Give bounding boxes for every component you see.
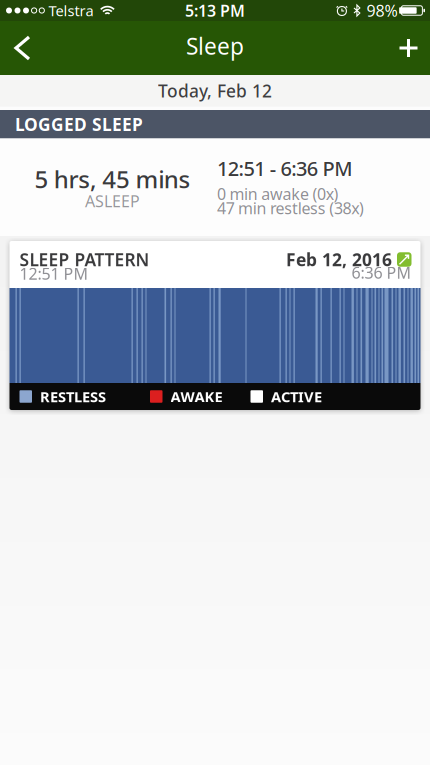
staticText: ASLEEP: [85, 190, 140, 212]
button[interactable]: Add: [399, 23, 430, 73]
staticText: LOGGED SLEEP: [15, 113, 143, 136]
staticText: 98%: [366, 0, 397, 21]
staticText: 12:51 - 6:36 PM: [217, 155, 352, 182]
staticText: 5 hrs, 45 mins: [34, 163, 190, 195]
staticText: 5:13 PM: [185, 0, 245, 21]
staticText: 12:51 PM: [19, 263, 88, 284]
staticText: 47 min restless (38x): [217, 197, 364, 218]
button[interactable]: Back: [0, 23, 29, 73]
staticText: 0 min awake (0x): [217, 183, 338, 204]
staticText: AWAKE: [170, 387, 222, 406]
staticText: ACTIVE: [271, 387, 322, 406]
button[interactable]: Share sleep pattern: [397, 252, 411, 267]
staticText: 6:36 PM: [351, 262, 411, 283]
staticText: SLEEP PATTERN: [19, 248, 149, 271]
staticText: Feb 12, 2016: [286, 248, 392, 271]
staticText: RESTLESS: [40, 387, 106, 406]
staticText: Telstra: [48, 1, 93, 20]
staticText: Today, Feb 12: [158, 79, 272, 102]
staticText: Sleep: [186, 31, 244, 61]
